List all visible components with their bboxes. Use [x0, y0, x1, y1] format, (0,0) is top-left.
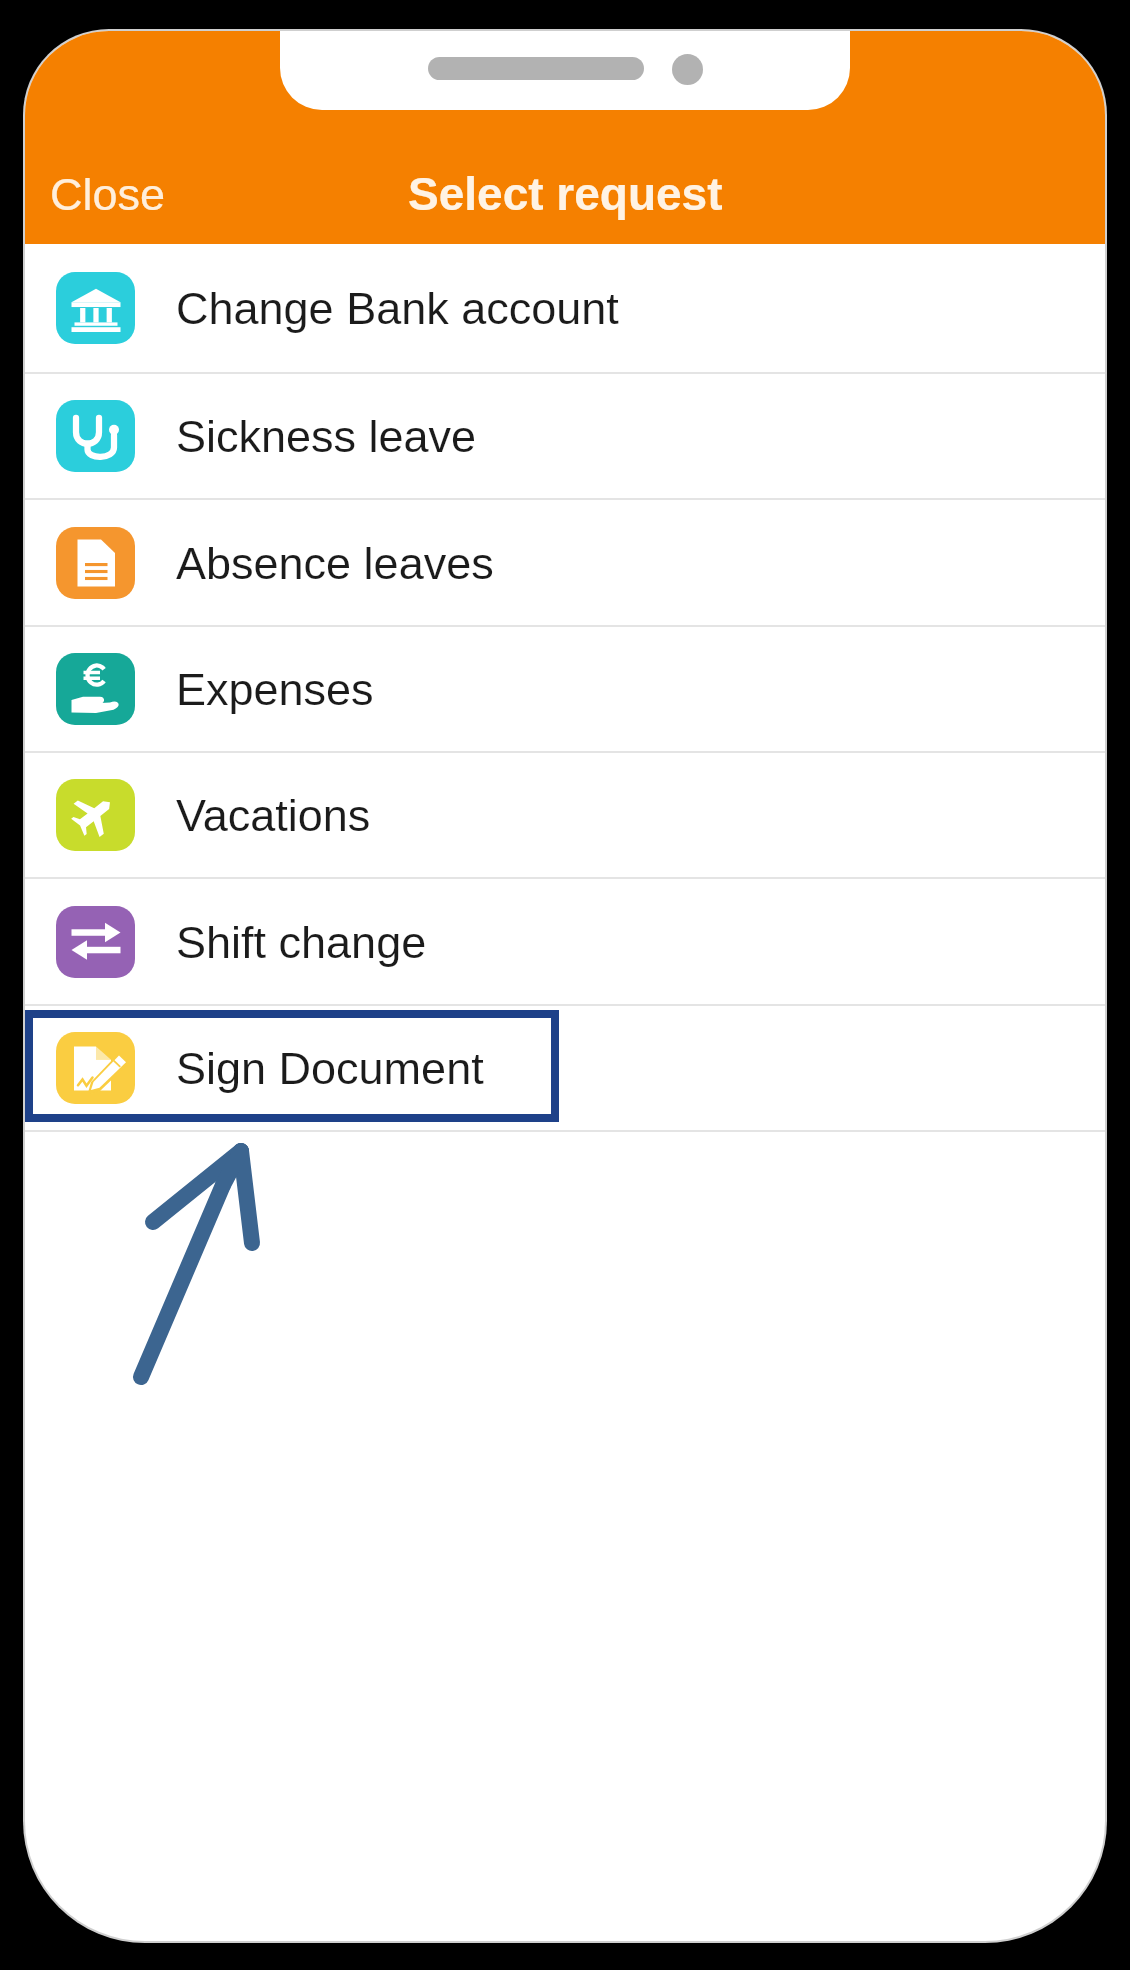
button[interactable]: Change Bank account [25, 244, 1105, 372]
staticText: Sign Document [176, 1043, 484, 1093]
button[interactable]: Shift change [25, 879, 1105, 1004]
staticText: Select request [408, 168, 723, 219]
staticText: Vacations [176, 790, 371, 840]
staticText: Change Bank account [176, 283, 619, 333]
button[interactable]: Vacations [25, 753, 1105, 877]
staticText: Close [50, 169, 166, 219]
staticText: Sickness leave [176, 411, 477, 461]
button[interactable]: Close [25, 155, 186, 244]
staticText: Shift change [176, 917, 427, 967]
staticText: Expenses [176, 664, 374, 714]
button[interactable]: Absence leaves [25, 500, 1105, 625]
button[interactable]: Expenses [25, 627, 1105, 751]
staticText: Absence leaves [176, 538, 494, 588]
button[interactable]: Sign Document [25, 1006, 1105, 1130]
button[interactable]: Sickness leave [25, 374, 1105, 498]
